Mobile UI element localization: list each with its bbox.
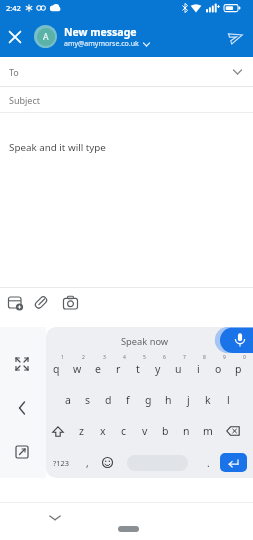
button[interactable]: m <box>197 415 218 447</box>
button[interactable] <box>46 415 70 447</box>
staticText: A <box>43 31 49 43</box>
button[interactable]: q <box>46 353 67 384</box>
staticText: To <box>9 66 19 78</box>
staticText: c <box>121 424 127 438</box>
staticText: f <box>126 393 130 407</box>
staticText: 1 <box>61 354 64 361</box>
button[interactable]: a <box>57 384 78 415</box>
staticText: e <box>95 362 101 376</box>
button[interactable]: i <box>188 353 208 384</box>
staticText: n <box>183 424 190 438</box>
button[interactable]: w <box>67 353 88 384</box>
button[interactable]: , <box>77 447 97 478</box>
button[interactable]: To <box>0 57 253 87</box>
button[interactable]: ?123 <box>46 447 77 478</box>
button[interactable] <box>118 526 139 532</box>
staticText: z <box>79 424 84 438</box>
button[interactable]: u <box>168 353 188 384</box>
button[interactable]: n <box>176 415 197 447</box>
staticText: o <box>215 362 222 376</box>
staticText: j <box>187 393 190 407</box>
button[interactable]: l <box>218 384 238 415</box>
staticText: x <box>100 424 106 438</box>
staticText: g <box>145 393 152 407</box>
button[interactable]: v <box>134 415 155 447</box>
staticText: Speak now <box>121 335 169 348</box>
staticText: 0 <box>243 354 246 361</box>
button[interactable]: Subject <box>0 87 253 113</box>
staticText: k <box>205 393 211 407</box>
staticText: amy@amymorse.co.uk <box>64 39 139 49</box>
button[interactable]: z <box>70 415 92 447</box>
staticText: q <box>53 362 60 376</box>
staticText: 4 <box>123 354 126 361</box>
staticText: . <box>207 456 210 470</box>
staticText: 2:42 <box>6 3 21 13</box>
button[interactable] <box>218 447 248 478</box>
staticText: y <box>155 362 161 376</box>
button[interactable]: y <box>148 353 168 384</box>
staticText: 7 <box>183 354 186 361</box>
staticText: New message <box>64 25 137 39</box>
staticText: t <box>136 362 140 376</box>
button[interactable]: h <box>158 384 178 415</box>
staticText: b <box>162 424 169 438</box>
button[interactable]: g <box>138 384 158 415</box>
staticText: 3 <box>103 354 106 361</box>
staticText: , <box>86 456 89 470</box>
button[interactable]: r <box>108 353 128 384</box>
button[interactable]: Speak now <box>46 327 253 353</box>
staticText: Subject <box>9 94 41 106</box>
button[interactable]: x <box>92 415 113 447</box>
button[interactable]: t <box>128 353 148 384</box>
button[interactable]: f <box>118 384 138 415</box>
button[interactable] <box>219 16 253 57</box>
staticText: u <box>175 362 182 376</box>
staticText: 5 <box>143 354 146 361</box>
button[interactable] <box>117 447 198 478</box>
button[interactable]: e <box>88 353 108 384</box>
button[interactable]: New message <box>64 25 150 49</box>
staticText: 9 <box>223 354 226 361</box>
button[interactable]: d <box>98 384 118 415</box>
staticText: 2 <box>82 354 85 361</box>
button[interactable] <box>0 16 30 57</box>
button[interactable]: j <box>178 384 198 415</box>
staticText: h <box>165 393 172 407</box>
staticText: m <box>203 424 213 438</box>
staticText: 6 <box>163 354 166 361</box>
button[interactable] <box>218 415 248 447</box>
staticText: v <box>142 424 148 438</box>
button[interactable]: p <box>228 353 248 384</box>
button[interactable]: c <box>113 415 134 447</box>
button[interactable]: k <box>198 384 218 415</box>
staticText: w <box>73 362 82 376</box>
staticText: l <box>227 393 230 407</box>
staticText: p <box>235 362 242 376</box>
staticText: d <box>105 393 112 407</box>
button[interactable]: . <box>198 447 218 478</box>
staticText: s <box>85 393 91 407</box>
staticText: i <box>197 362 200 376</box>
staticText: a <box>65 393 71 407</box>
button[interactable]: s <box>78 384 98 415</box>
staticText: Speak and it will type <box>9 141 106 154</box>
staticText: ?123 <box>53 458 70 468</box>
staticText: r <box>116 362 121 376</box>
button[interactable] <box>97 447 117 478</box>
staticText: 8 <box>203 354 206 361</box>
button[interactable]: o <box>208 353 228 384</box>
button[interactable]: b <box>155 415 176 447</box>
